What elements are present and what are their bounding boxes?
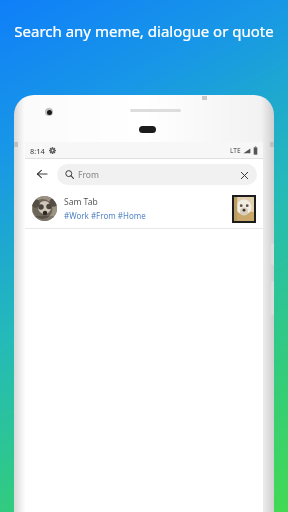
button[interactable]: Back [31, 163, 53, 185]
staticText: LTE [230, 146, 241, 155]
button[interactable]: Clear search [237, 168, 251, 182]
button[interactable]: Sam Tab [25, 189, 263, 228]
staticText: From [78, 169, 99, 181]
staticText: Sam Tab [64, 196, 98, 208]
button[interactable]: From [57, 164, 257, 185]
staticText: #Work #From #Home [64, 210, 146, 221]
staticText: 8:14 [30, 146, 45, 156]
staticText: Search any meme, dialogue or quote [14, 21, 274, 41]
